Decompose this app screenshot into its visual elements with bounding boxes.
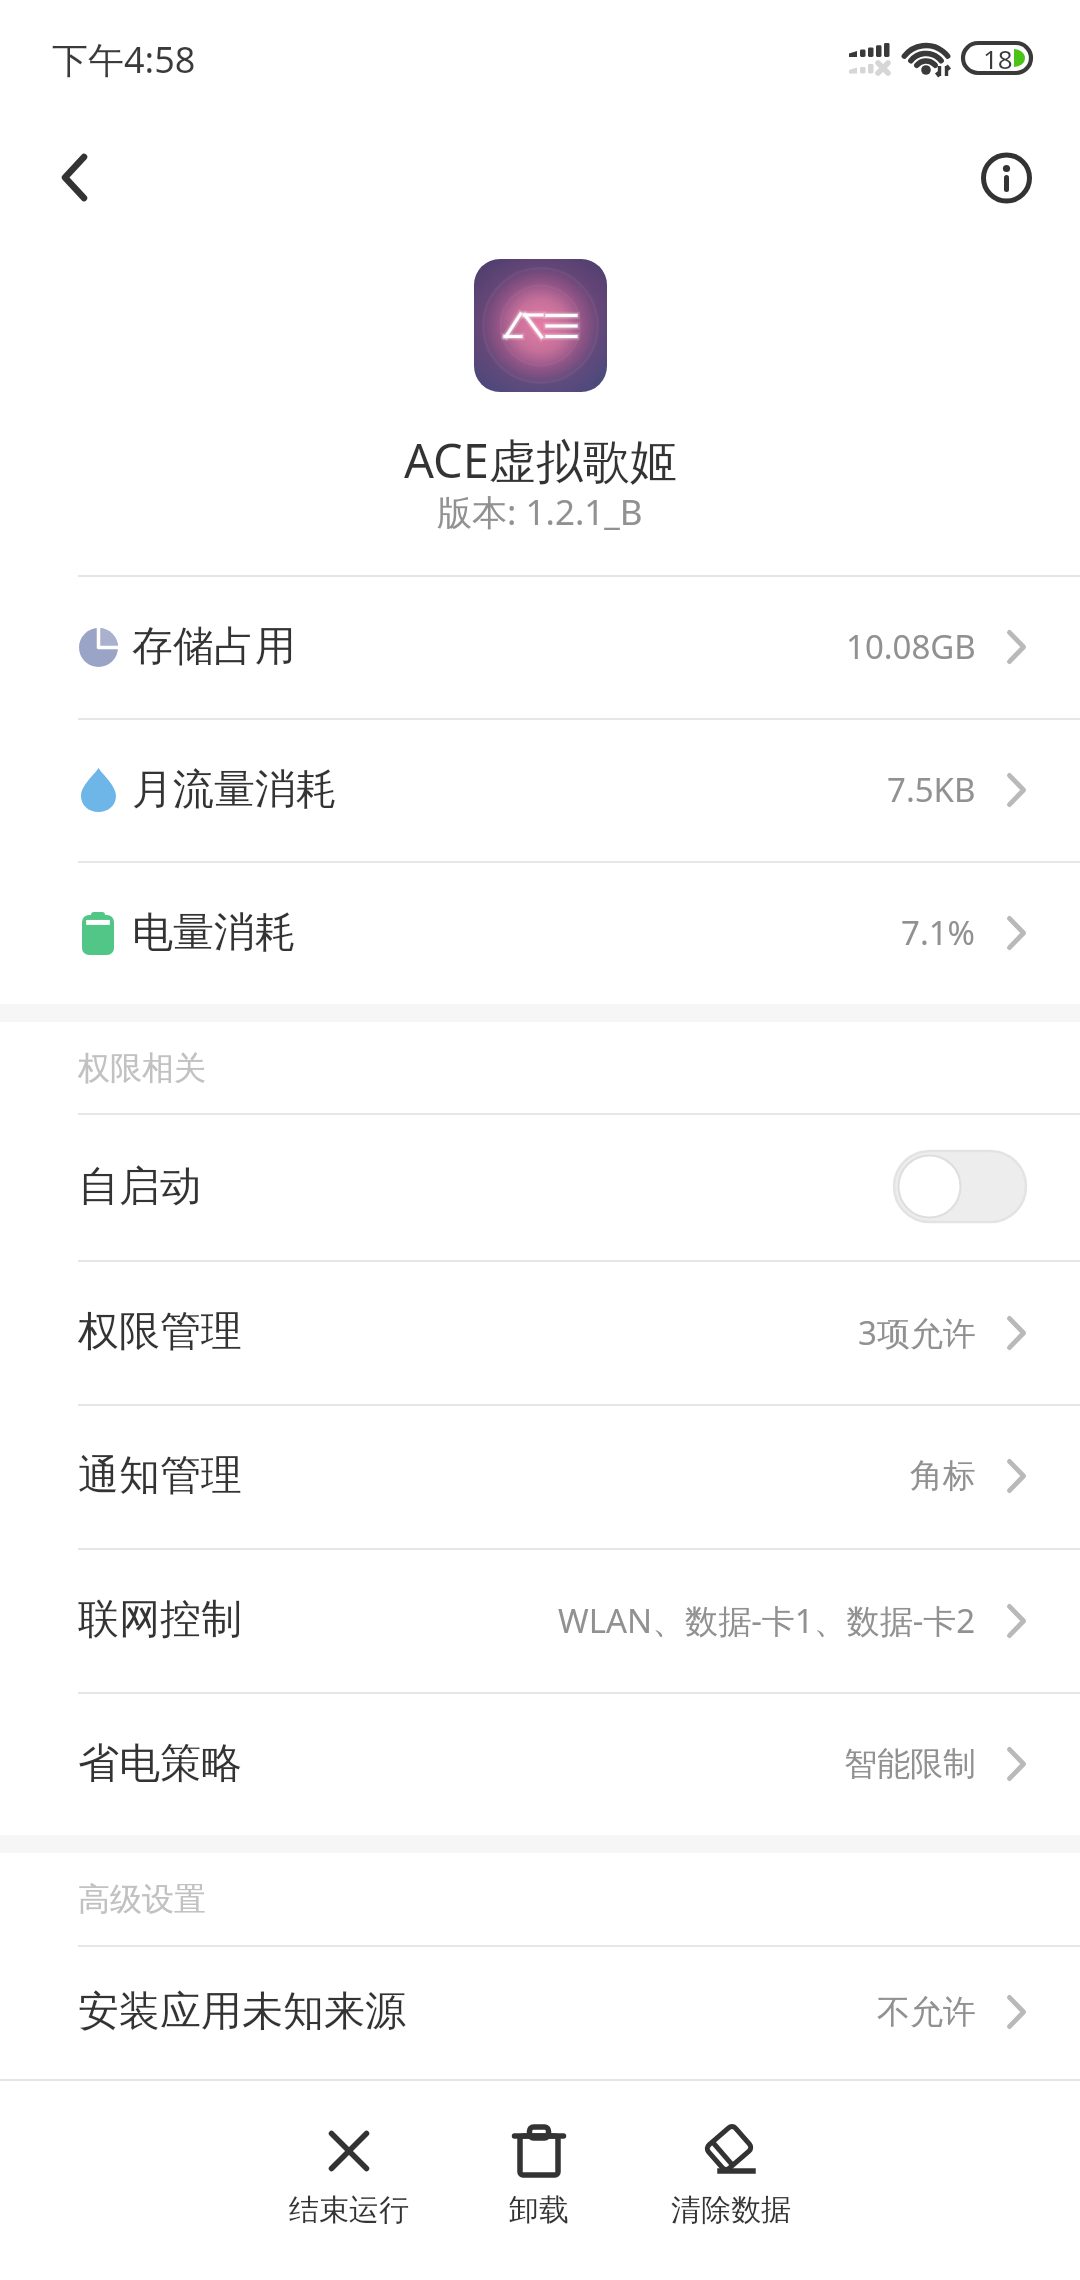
staticText: 电量消耗 <box>132 907 296 959</box>
button[interactable]: 月流量消耗 <box>0 718 1080 861</box>
staticText: 下午4:58 <box>52 35 196 84</box>
button[interactable]: 卸载 <box>449 2105 629 2240</box>
button[interactable]: 省电策略 <box>0 1692 1080 1835</box>
button[interactable]: 安装应用未知来源 <box>0 1945 1080 2079</box>
button[interactable]: 联网控制 <box>0 1548 1080 1692</box>
button[interactable]: 存储占用 <box>0 575 1080 718</box>
staticText: 权限相关 <box>78 1048 206 1088</box>
staticText: 结束运行 <box>289 2191 409 2229</box>
button[interactable]: 自启动 <box>0 1113 1080 1260</box>
staticText: 18 <box>983 41 1013 76</box>
button[interactable]: 电量消耗 <box>0 861 1080 1004</box>
staticText: 10.08GB <box>846 624 976 669</box>
staticText: 角标 <box>910 1455 976 1497</box>
staticText: 存储占用 <box>132 621 296 673</box>
staticText: 7.1% <box>901 910 976 955</box>
staticText: 高级设置 <box>78 1879 206 1919</box>
staticText: 联网控制 <box>78 1594 242 1646</box>
button[interactable]: Back <box>32 136 116 220</box>
button[interactable]: 清除数据 <box>641 2105 821 2240</box>
staticText: 月流量消耗 <box>132 764 337 816</box>
button[interactable]: 权限管理 <box>0 1260 1080 1404</box>
staticText: 卸载 <box>509 2191 569 2229</box>
staticText: WLAN、数据-卡1、数据-卡2 <box>558 1598 976 1643</box>
staticText: 3项允许 <box>858 1310 976 1355</box>
button[interactable]: 结束运行 <box>259 2105 439 2240</box>
staticText: 省电策略 <box>78 1738 242 1790</box>
staticText: 版本: 1.2.1_B <box>437 488 643 536</box>
staticText: 不允许 <box>877 1991 976 2033</box>
staticText: 自启动 <box>78 1161 201 1213</box>
button[interactable]: 通知管理 <box>0 1404 1080 1548</box>
staticText: 通知管理 <box>78 1450 242 1502</box>
staticText: 安装应用未知来源 <box>78 1986 406 2038</box>
staticText: ACE虚拟歌姬 <box>404 428 677 492</box>
button[interactable]: App info <box>964 136 1048 220</box>
staticText: 智能限制 <box>844 1743 976 1785</box>
staticText: 7.5KB <box>887 767 976 812</box>
staticText: 权限管理 <box>78 1306 242 1358</box>
staticText: 清除数据 <box>671 2191 791 2229</box>
